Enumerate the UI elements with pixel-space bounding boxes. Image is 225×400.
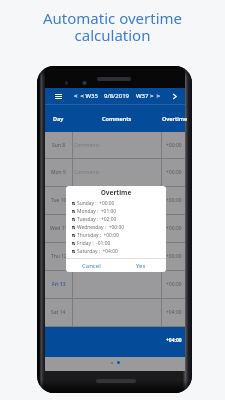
staticText: Comments [102, 115, 132, 122]
staticText: Overtime [162, 115, 185, 122]
button[interactable]: Tue 10 [45, 187, 185, 214]
staticText: Fri 13 [52, 281, 66, 288]
staticText: Tuesday : +02:00 [77, 216, 117, 223]
staticText: Sat 14 [51, 309, 66, 316]
staticText: +00:00 [166, 169, 182, 176]
button[interactable]: Sun 8 [45, 132, 185, 158]
staticText: Wednesday : +00:00 [77, 224, 125, 231]
button[interactable]: Thu 12 [45, 243, 185, 270]
button[interactable]: Mon 9 [45, 159, 185, 186]
staticText: Day [53, 115, 64, 122]
staticText: Comments [74, 253, 100, 260]
button[interactable]: < < W35 [74, 92, 98, 100]
staticText: Comments [74, 142, 100, 149]
button[interactable]: Wed 11 [45, 215, 185, 242]
button[interactable]: Tuesday : +02:00 [72, 215, 166, 223]
staticText: Friday : -01:00 [77, 240, 111, 247]
staticText: Cancel [82, 262, 101, 270]
staticText: Saturday : +04:00 [77, 248, 118, 255]
staticText: Yes [136, 262, 146, 270]
button[interactable]: Yes [116, 259, 166, 272]
staticText: 9/8/2019 [104, 92, 130, 100]
staticText: +00:00 [166, 253, 182, 260]
button[interactable]: Fri 13 [45, 271, 185, 298]
staticText: Comments [74, 169, 100, 176]
staticText: +00:00 [166, 281, 182, 288]
staticText: Thursday : +00:00 [77, 232, 119, 239]
button[interactable]: Saturday : +04:00 [72, 247, 166, 255]
staticText: Sun 8 [52, 142, 66, 149]
button[interactable]: Wednesday : +00:00 [72, 223, 166, 231]
button[interactable]: Sat 14 [45, 299, 185, 326]
button[interactable]: W37 > > [136, 92, 160, 100]
staticText: Comments [74, 197, 100, 204]
staticText: +00:00 [166, 142, 182, 149]
staticText: Sunday : +00:00 [77, 200, 115, 207]
button[interactable]: Friday : -01:00 [72, 239, 166, 247]
staticText: Comments [74, 225, 100, 232]
button[interactable]: Sunday : +00:00 [72, 199, 166, 207]
staticText: +00:00 [166, 197, 182, 204]
staticText: Wed 11 [50, 225, 68, 232]
staticText: Automatic overtime calculation [0, 8, 225, 45]
staticText: Thu 12 [51, 253, 67, 260]
button[interactable] [117, 361, 120, 364]
staticText: Mon 9 [51, 169, 66, 176]
button[interactable]: Next week [167, 88, 181, 104]
staticText: Monday : +01:00 [77, 208, 117, 215]
staticText: +00:00 [166, 225, 182, 232]
staticText: +04:00 [166, 309, 182, 316]
button[interactable]: Cancel [66, 259, 116, 272]
button[interactable]: Thursday : +00:00 [72, 231, 166, 239]
button[interactable]: Open navigation menu [52, 88, 64, 104]
staticText: +04:00 [166, 337, 182, 344]
staticText: Tue 10 [51, 197, 67, 204]
staticText: Overtime [66, 188, 166, 197]
button[interactable]: Monday : +01:00 [72, 207, 166, 215]
